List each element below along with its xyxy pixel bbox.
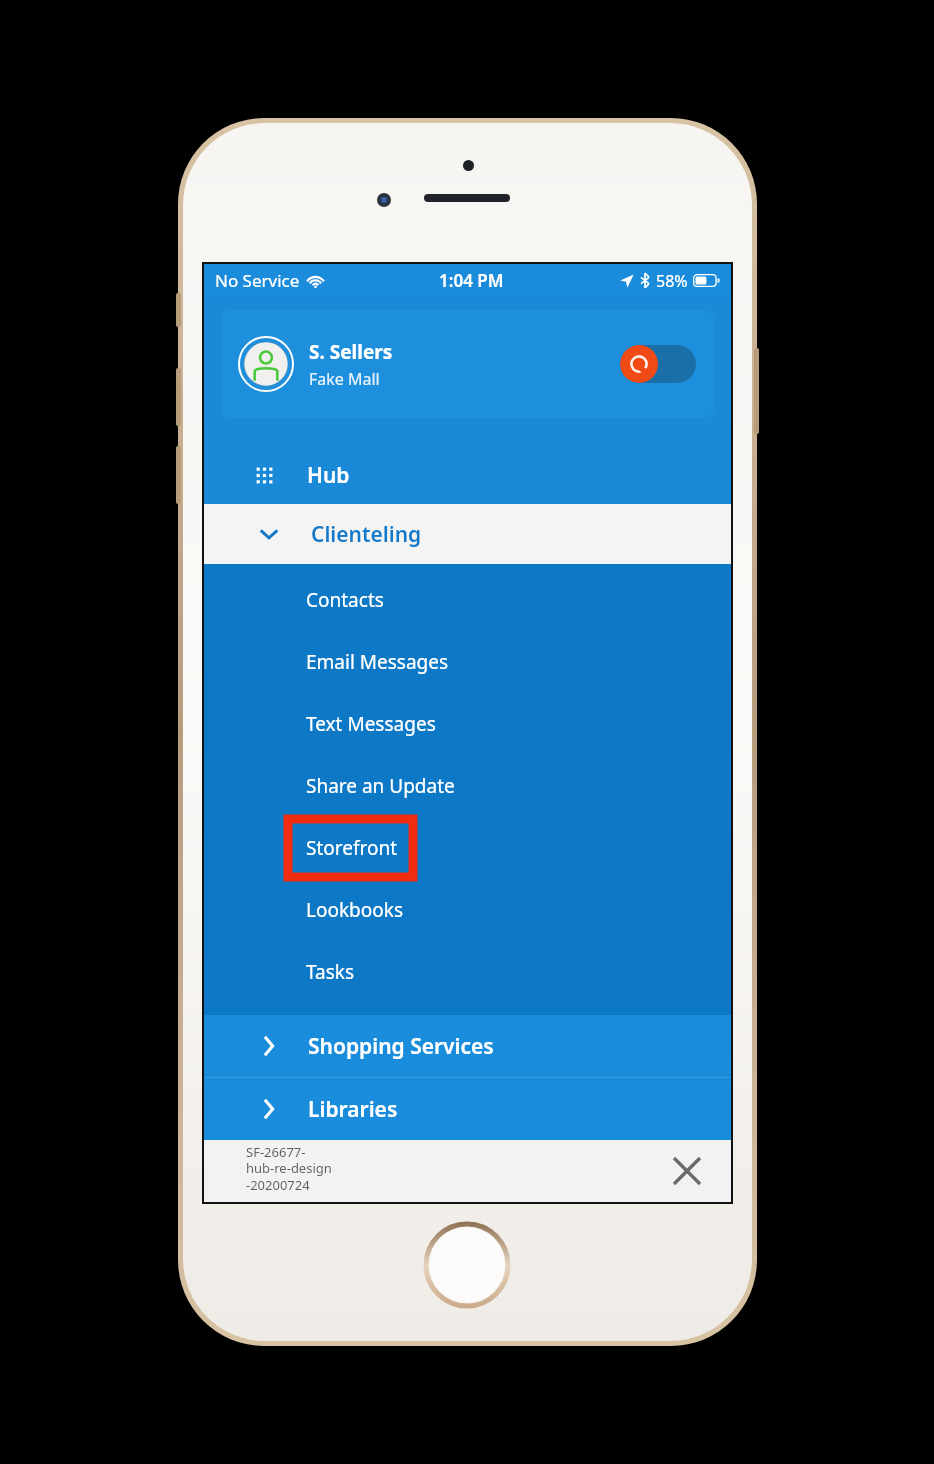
button[interactable]: Clienteling [204,504,731,564]
button[interactable]: Lookbooks [204,879,731,941]
staticText: Share an Update [306,773,455,799]
staticText: SF-26677-hub-re-design-20200724 [246,1143,332,1194]
button[interactable]: Share an Update [204,755,731,817]
button[interactable]: Email Messages [204,631,731,693]
button[interactable]: Text Messages [204,693,731,755]
button[interactable]: Hub [204,446,731,504]
staticText: Clienteling [311,520,422,549]
staticText: Fake Mall [309,368,380,390]
staticText: Hub [307,461,350,490]
button[interactable]: Storefront [204,817,731,879]
staticText: Shopping Services [308,1032,494,1061]
staticText: Libraries [308,1095,398,1124]
staticText: 58% [656,270,688,292]
button[interactable]: S. Sellers [221,310,714,418]
button[interactable]: Close [667,1151,707,1191]
staticText: Storefront [306,835,398,861]
staticText: Contacts [306,587,384,613]
staticText: No Service [215,269,300,292]
staticText: Lookbooks [306,897,404,923]
button[interactable]: Contacts [204,569,731,631]
staticText: S. Sellers [309,339,393,365]
staticText: Email Messages [306,649,449,675]
button[interactable]: Shopping Services [204,1015,731,1077]
staticText: 1:04 PM [439,269,504,292]
button[interactable]: Availability toggle [620,345,696,383]
staticText: Text Messages [306,711,436,737]
staticText: Tasks [306,959,355,985]
button[interactable]: Tasks [204,941,731,1003]
button[interactable]: Libraries [204,1078,731,1140]
